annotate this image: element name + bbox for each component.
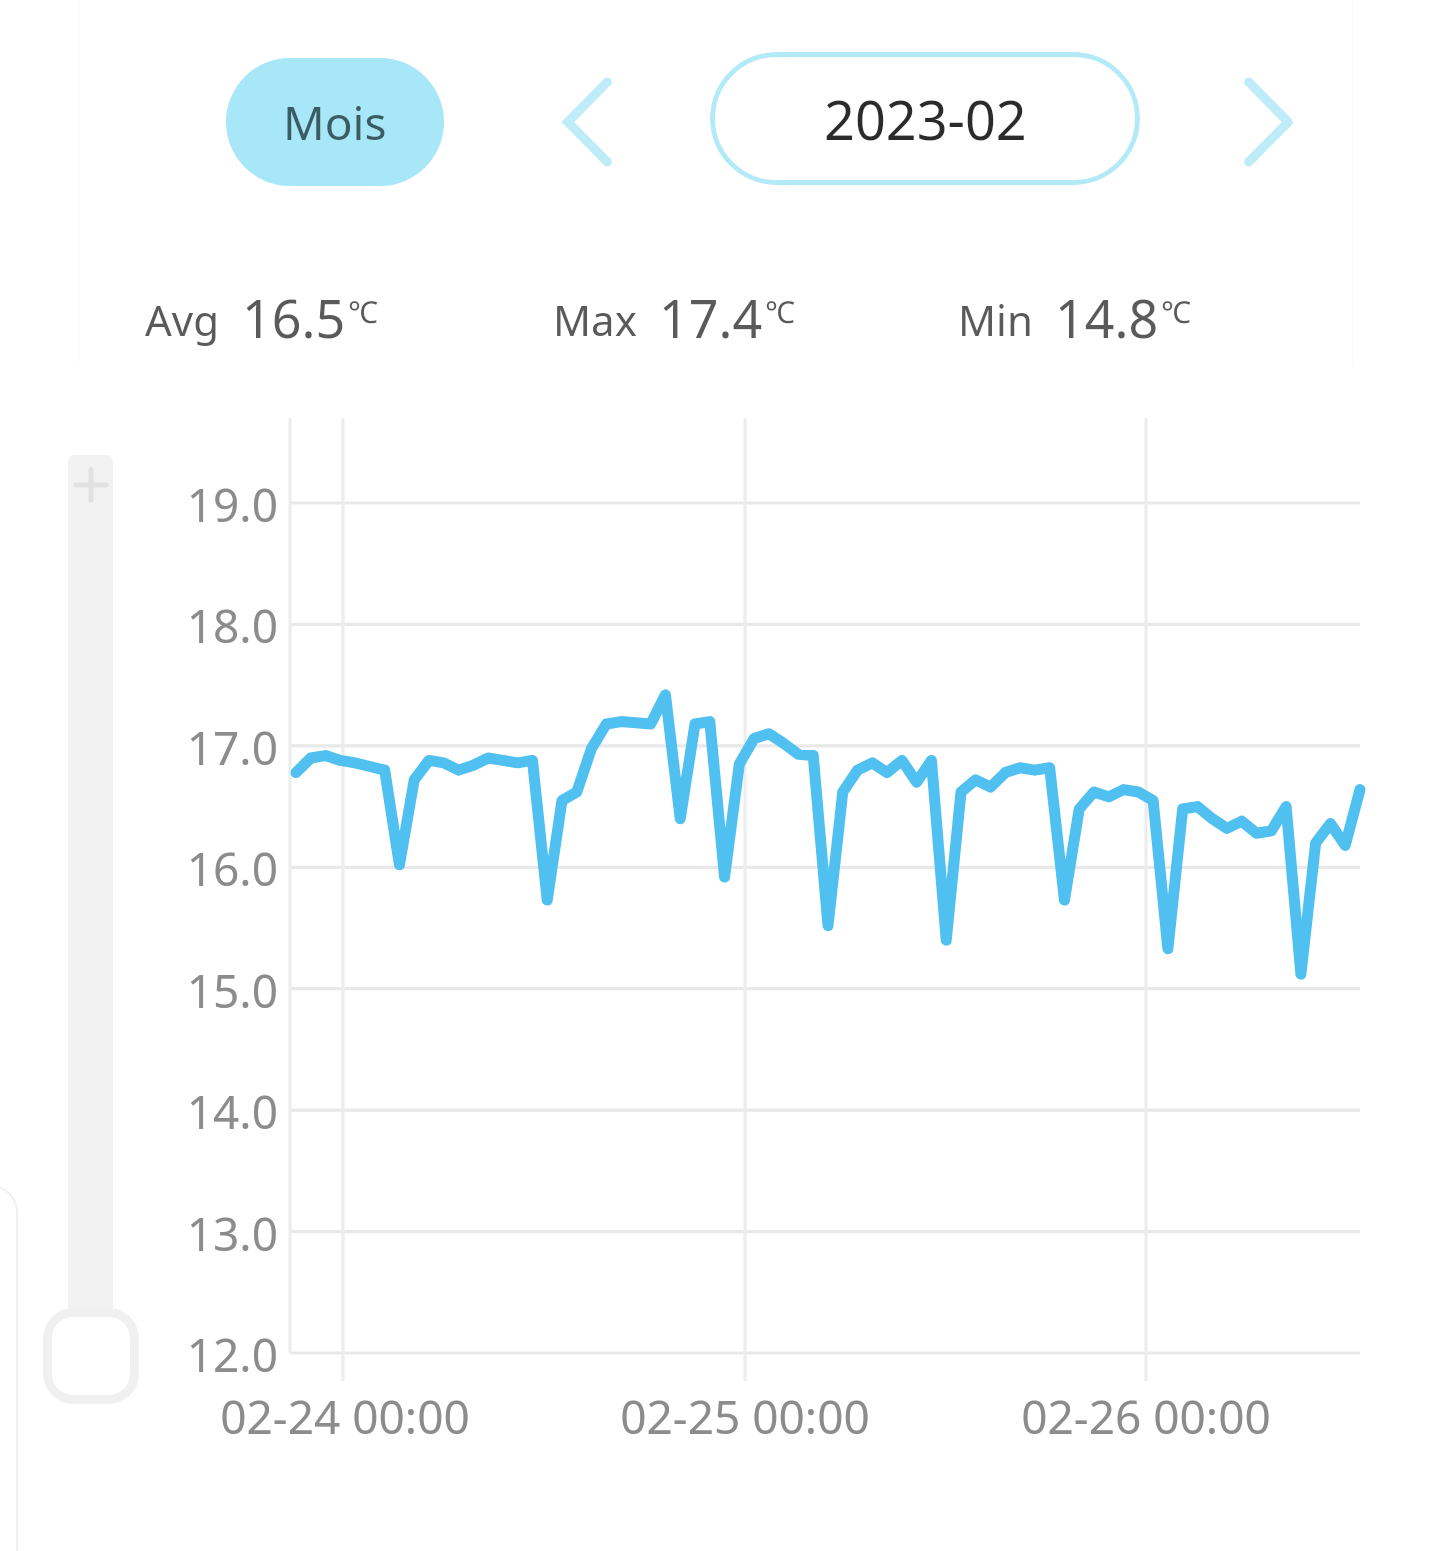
button[interactable]: Curseur de zoom [43, 1308, 139, 1404]
staticText: ℃ [1161, 291, 1191, 332]
staticText: Avg [145, 291, 220, 348]
staticText: 17.4 [659, 282, 763, 351]
button[interactable]: Mois précédent [540, 62, 636, 182]
staticText: 14.0 [90, 1080, 278, 1143]
staticText: ℃ [765, 291, 795, 332]
staticText: 14.8 [1055, 282, 1159, 351]
button[interactable]: Mois suivant [1220, 62, 1316, 182]
staticText: 02-26 00:00 [946, 1385, 1346, 1448]
button[interactable]: Max [553, 282, 795, 354]
staticText: ℃ [348, 291, 378, 332]
staticText: Min [958, 291, 1033, 348]
staticText: Max [553, 291, 637, 348]
staticText: 19.0 [90, 473, 278, 536]
button[interactable]: Mois [226, 58, 444, 186]
staticText: 12.0 [90, 1323, 278, 1386]
staticText: 2023-02 [824, 82, 1027, 156]
staticText: Mois [283, 91, 387, 154]
button[interactable]: Min [958, 282, 1191, 354]
staticText: 13.0 [90, 1202, 278, 1265]
button[interactable]: 2023-02 [710, 52, 1140, 185]
button[interactable]: Avg [145, 282, 378, 354]
staticText: 15.0 [90, 959, 278, 1022]
staticText: 16.5 [242, 282, 346, 351]
staticText: 02-24 00:00 [145, 1385, 545, 1448]
staticText: 16.0 [90, 837, 278, 900]
staticText: 17.0 [90, 716, 278, 779]
staticText: 02-25 00:00 [545, 1385, 945, 1448]
staticText: 18.0 [90, 594, 278, 657]
